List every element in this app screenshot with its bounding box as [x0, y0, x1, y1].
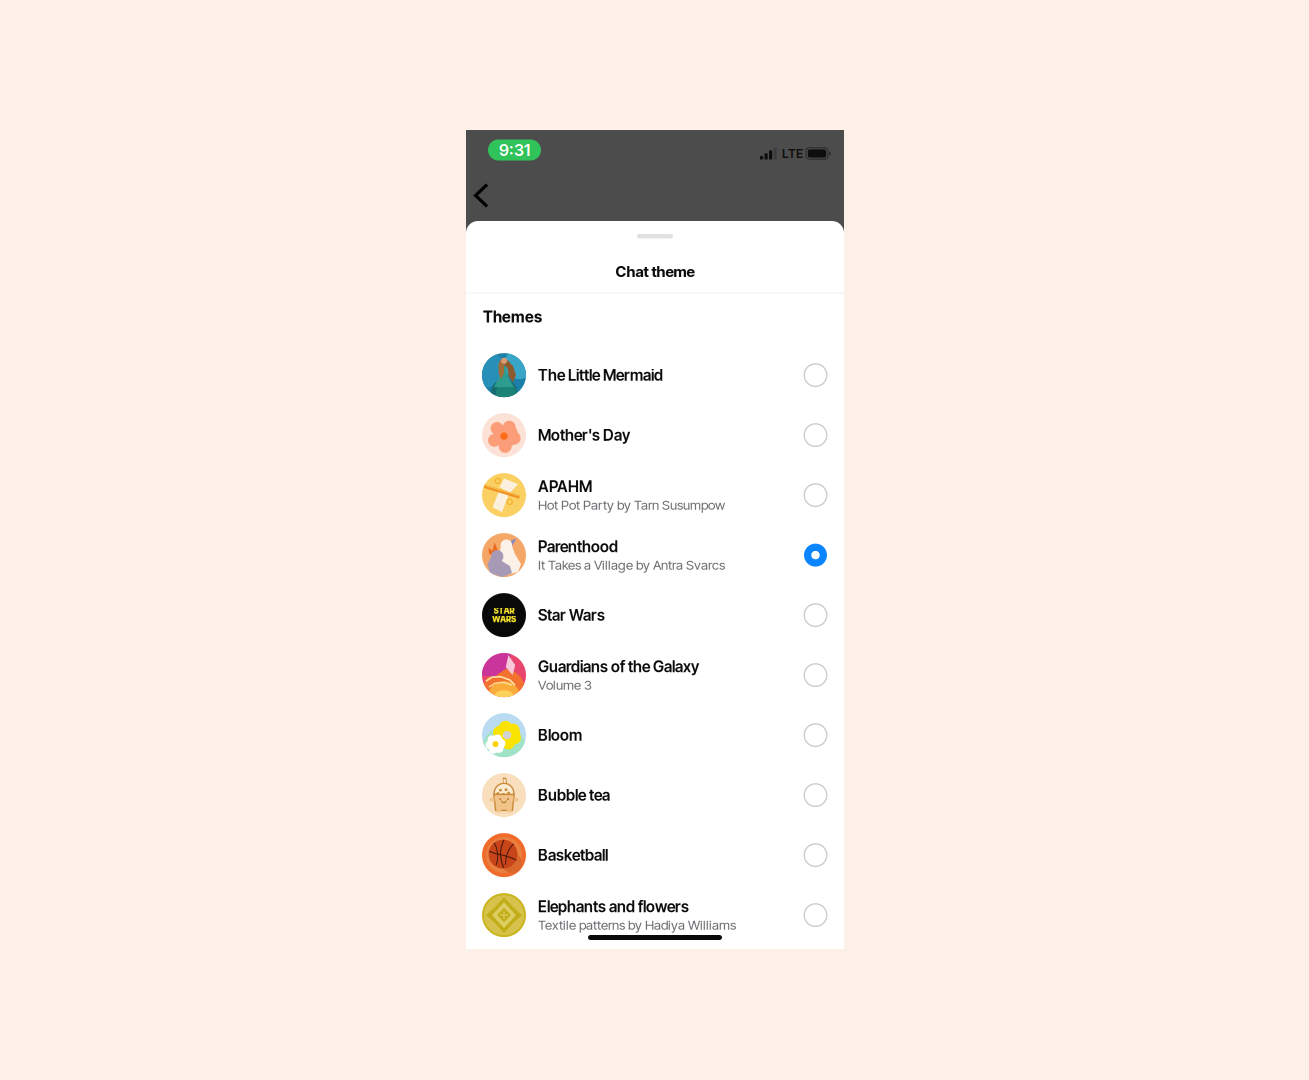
staticText: Bubble tea: [538, 786, 610, 804]
button[interactable]: STAR: [466, 585, 844, 645]
staticText: Basketball: [538, 846, 608, 864]
button[interactable]: Guardians of the Galaxy: [466, 645, 844, 705]
staticText: Star Wars: [538, 606, 605, 624]
staticText: WARS: [492, 615, 516, 624]
button[interactable]: Back: [463, 173, 499, 217]
staticText: Mother's Day: [538, 426, 630, 444]
button[interactable]: APAHM: [466, 465, 844, 525]
staticText: Elephants and flowers: [538, 897, 689, 916]
staticText: LTE: [782, 146, 803, 161]
staticText: Bloom: [538, 726, 582, 744]
button[interactable]: Mother's Day: [466, 405, 844, 465]
staticText: It Takes a Village by Antra Svarcs: [538, 557, 725, 573]
staticText: The Little Mermaid: [538, 366, 663, 384]
button[interactable]: Elephants and flowers: [466, 885, 844, 945]
button[interactable]: Parenthood: [466, 525, 844, 585]
staticText: Textile patterns by Hadiya Williams: [538, 917, 736, 933]
staticText: Parenthood: [538, 537, 618, 556]
button[interactable]: Basketball: [466, 825, 844, 885]
staticText: STAR: [493, 606, 514, 616]
staticText: Hot Pot Party by Tarn Susumpow: [538, 497, 725, 513]
button[interactable]: The Little Mermaid: [466, 345, 844, 405]
staticText: Volume 3: [538, 677, 592, 693]
staticText: Themes: [483, 308, 542, 326]
staticText: 9:31: [499, 140, 530, 160]
staticText: Guardians of the Galaxy: [538, 657, 699, 676]
button[interactable]: Bubble tea: [466, 765, 844, 825]
staticText: APAHM: [538, 477, 592, 496]
staticText: Chat theme: [615, 262, 694, 281]
button[interactable]: Bloom: [466, 705, 844, 765]
